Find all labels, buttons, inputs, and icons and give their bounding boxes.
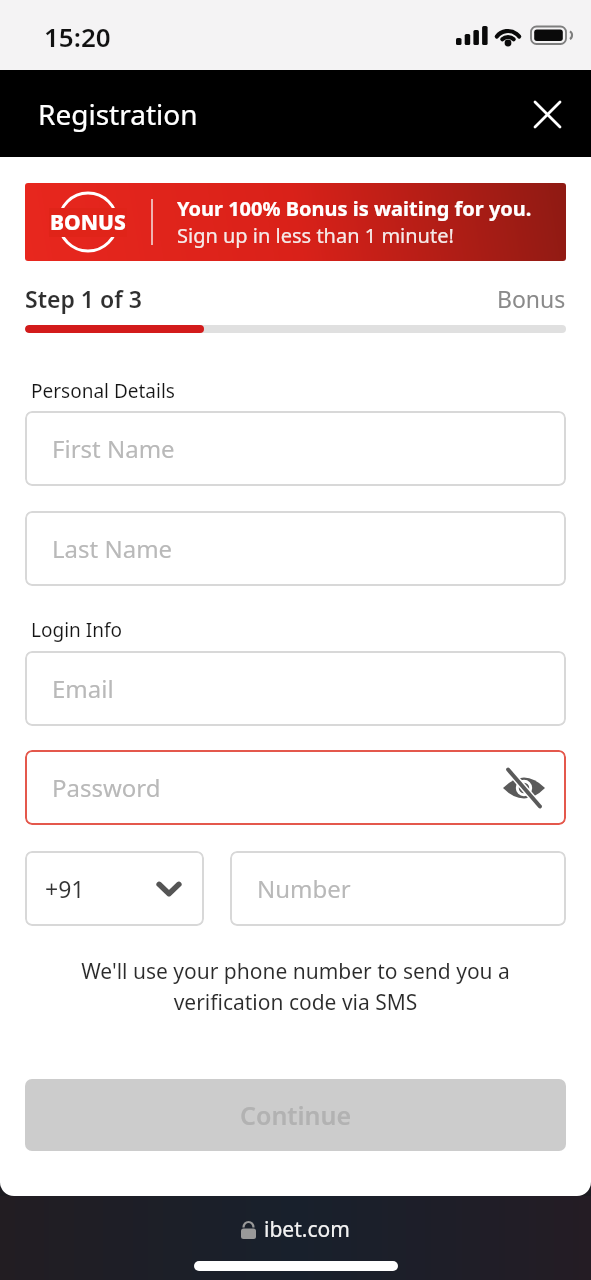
staticText: Number	[257, 872, 566, 905]
button[interactable]: +91	[25, 851, 204, 926]
button[interactable]: ibet.com	[241, 1215, 350, 1244]
button[interactable]: Email	[25, 651, 566, 726]
staticText: Password	[52, 771, 503, 804]
button[interactable]: First Name	[25, 411, 566, 486]
staticText: Login Info	[31, 617, 122, 643]
staticText: Bonus	[497, 283, 566, 314]
staticText: First Name	[52, 432, 566, 465]
staticText: Continue	[240, 1098, 352, 1132]
staticText: Email	[52, 672, 566, 705]
button[interactable]	[527, 94, 567, 134]
staticText: 15:20	[44, 19, 111, 54]
staticText: Your 100% Bonus is waiting for you.	[177, 195, 532, 222]
staticText: We'll use your phone number to send you …	[25, 957, 566, 1016]
staticText: Last Name	[52, 532, 566, 565]
button[interactable]: BONUS	[25, 183, 566, 261]
staticText: ibet.com	[264, 1215, 350, 1244]
button[interactable]: Last Name	[25, 511, 566, 586]
button[interactable]: Continue	[25, 1079, 566, 1151]
staticText: +91	[45, 873, 85, 904]
staticText: Step 1 of 3	[25, 283, 142, 314]
staticText: Sign up in less than 1 minute!	[177, 222, 454, 249]
staticText: BONUS	[50, 208, 126, 237]
button[interactable]: Number	[230, 851, 566, 926]
staticText: Personal Details	[31, 378, 175, 404]
button[interactable]: Password	[25, 750, 566, 825]
staticText: Registration	[38, 95, 198, 133]
